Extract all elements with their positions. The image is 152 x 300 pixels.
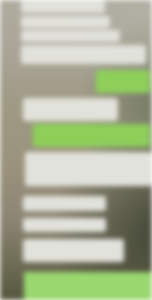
button[interactable] bbox=[24, 272, 152, 300]
button[interactable] bbox=[23, 98, 118, 121]
button[interactable] bbox=[21, 30, 120, 42]
button[interactable] bbox=[23, 218, 106, 232]
button[interactable] bbox=[33, 124, 150, 147]
button[interactable] bbox=[23, 239, 124, 262]
button[interactable] bbox=[23, 196, 106, 211]
button[interactable] bbox=[21, 16, 110, 28]
button[interactable] bbox=[21, 0, 105, 13]
button[interactable] bbox=[21, 45, 146, 64]
button[interactable] bbox=[96, 70, 150, 93]
button[interactable] bbox=[25, 152, 152, 186]
